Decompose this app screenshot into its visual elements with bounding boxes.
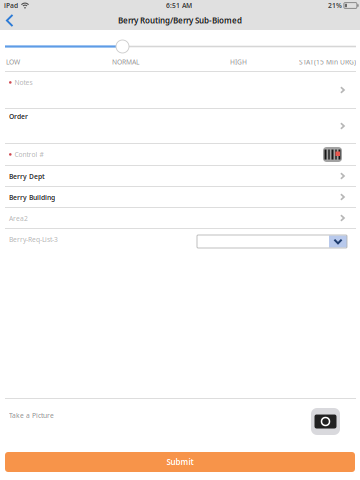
button[interactable]: Berry Dept — [0, 166, 360, 187]
button[interactable]: Back — [0, 11, 20, 30]
button[interactable]: Order — [0, 109, 360, 144]
staticText: Notes — [15, 78, 33, 87]
staticText: NORMAL — [112, 58, 139, 66]
staticText: Berry Building — [9, 193, 55, 202]
staticText: 6:51 AM — [166, 1, 192, 10]
staticText: Area2 — [9, 214, 28, 223]
staticText: Submit — [166, 457, 193, 467]
button[interactable]: Select Berry-Req-List-3 — [197, 235, 347, 248]
staticText: Berry Dept — [9, 172, 45, 181]
staticText: HIGH — [230, 58, 247, 66]
staticText: STAT(15 Min URG) — [299, 58, 356, 66]
staticText: iPad — [4, 1, 18, 10]
staticText: Order — [9, 112, 28, 121]
staticText: Control # — [15, 150, 44, 159]
button[interactable]: Notes — [0, 72, 360, 109]
staticText: LOW — [6, 58, 20, 66]
button[interactable]: Control # — [0, 144, 360, 166]
staticText: Take a Picture — [9, 411, 54, 420]
staticText: Berry Routing/Berry Sub-Biomed — [118, 15, 242, 26]
button[interactable]: Take a Picture — [311, 408, 340, 435]
staticText: 21% — [328, 1, 342, 10]
button[interactable]: Area2 — [0, 208, 360, 229]
button[interactable]: Submit — [5, 452, 355, 472]
button[interactable]: Berry Building — [0, 187, 360, 208]
staticText: Berry-Req-List-3 — [9, 235, 58, 244]
